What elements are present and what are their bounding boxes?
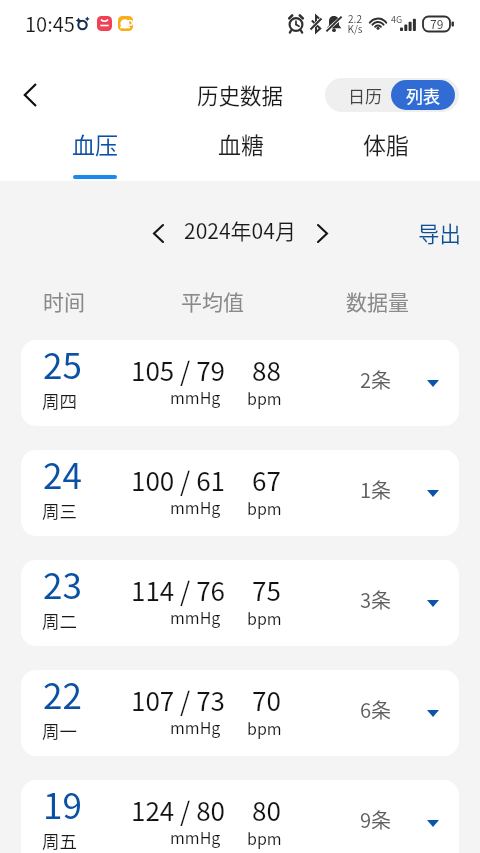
staticText: 2.2 K/s <box>347 11 363 36</box>
staticText: 周三 <box>42 498 77 523</box>
button[interactable]: 导出 <box>418 217 462 248</box>
staticText: 80 <box>252 791 281 829</box>
button[interactable]: Expand <box>420 480 446 506</box>
staticText: 79 <box>430 15 444 32</box>
button[interactable]: Previous month <box>140 212 176 248</box>
staticText: 10:45 <box>25 9 75 38</box>
staticText: 9条 <box>360 805 392 834</box>
staticText: 2条 <box>360 365 392 394</box>
staticText: 血压 <box>72 127 118 160</box>
staticText: 6条 <box>360 695 392 724</box>
staticText: 3条 <box>360 585 392 614</box>
staticText: bpm <box>247 496 282 519</box>
staticText: 25 <box>43 340 82 389</box>
staticText: 114 / 76 <box>131 571 225 609</box>
staticText: mmHg <box>170 605 221 628</box>
staticText: 124 / 80 <box>131 791 225 829</box>
button[interactable]: 19 <box>21 780 459 853</box>
staticText: bpm <box>247 606 282 629</box>
staticText: 100 / 61 <box>131 461 225 499</box>
button[interactable]: 日历 <box>325 78 391 112</box>
staticText: 19 <box>43 780 82 829</box>
staticText: bpm <box>247 386 282 409</box>
button[interactable]: Expand <box>420 370 446 396</box>
staticText: 导出 <box>418 217 462 248</box>
button[interactable]: Back <box>4 69 56 121</box>
staticText: 体脂 <box>363 127 409 160</box>
staticText: 周二 <box>42 608 77 633</box>
staticText: 24 <box>43 450 82 499</box>
staticText: 107 / 73 <box>131 681 225 719</box>
staticText: 历史数据 <box>197 79 284 110</box>
staticText: mmHg <box>170 825 221 848</box>
staticText: 列表 <box>406 83 440 108</box>
staticText: mmHg <box>170 715 221 738</box>
button[interactable]: Next month <box>304 212 340 248</box>
staticText: 88 <box>252 351 281 389</box>
button[interactable]: Expand <box>420 810 446 836</box>
staticText: 周四 <box>42 388 77 413</box>
button[interactable]: Expand <box>420 700 446 726</box>
button[interactable]: 列表 <box>391 80 455 110</box>
staticText: 血糖 <box>218 127 264 160</box>
staticText: 75 <box>252 571 281 609</box>
button[interactable]: 血压 <box>22 120 168 181</box>
button[interactable]: 24 <box>21 450 459 536</box>
staticText: 2024年04月 <box>184 215 296 245</box>
staticText: 日历 <box>348 83 382 108</box>
staticText: 23 <box>43 560 82 609</box>
button[interactable]: 25 <box>21 340 459 426</box>
button[interactable]: 23 <box>21 560 459 646</box>
staticText: 105 / 79 <box>131 351 225 389</box>
staticText: mmHg <box>170 495 221 518</box>
staticText: 平均值 <box>181 286 244 316</box>
staticText: 70 <box>252 681 281 719</box>
staticText: 4G <box>391 13 403 26</box>
staticText: 数据量 <box>346 286 409 316</box>
button[interactable]: 22 <box>21 670 459 756</box>
staticText: 67 <box>252 461 281 499</box>
staticText: 1条 <box>360 475 392 504</box>
staticText: 时间 <box>43 286 85 316</box>
staticText: bpm <box>247 716 282 739</box>
button[interactable]: 体脂 <box>313 120 458 181</box>
button[interactable]: 血糖 <box>168 120 313 181</box>
staticText: mmHg <box>170 385 221 408</box>
staticText: bpm <box>247 826 282 849</box>
staticText: 22 <box>43 670 82 719</box>
staticText: 周一 <box>42 718 77 743</box>
staticText: 周五 <box>42 828 77 853</box>
button[interactable]: Expand <box>420 590 446 616</box>
